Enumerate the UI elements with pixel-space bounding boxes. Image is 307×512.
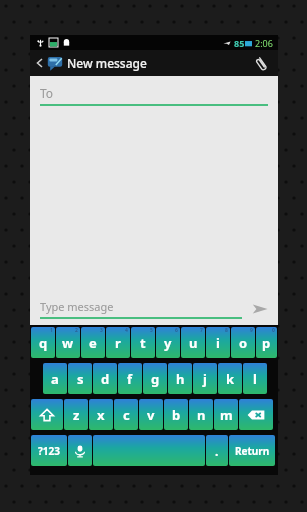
button[interactable]: 3 bbox=[81, 327, 105, 358]
button[interactable]: b bbox=[164, 399, 188, 430]
staticText: t bbox=[140, 334, 146, 352]
button[interactable]: Type message bbox=[40, 299, 242, 319]
button[interactable]: 0 bbox=[256, 327, 277, 358]
staticText: r bbox=[115, 334, 121, 352]
staticText: b bbox=[172, 406, 181, 424]
button[interactable]: Return bbox=[229, 435, 275, 466]
staticText: a bbox=[51, 370, 59, 388]
staticText: 5 bbox=[150, 327, 153, 334]
button[interactable]: To bbox=[40, 85, 268, 106]
button[interactable]: 1 bbox=[31, 327, 55, 358]
button[interactable]: Send bbox=[242, 293, 278, 325]
staticText: s bbox=[77, 370, 84, 388]
button[interactable]: Shift bbox=[31, 399, 63, 430]
button[interactable]: Space bbox=[93, 435, 205, 466]
button[interactable]: d bbox=[93, 363, 117, 394]
staticText: 7 bbox=[200, 327, 203, 334]
button[interactable]: c bbox=[114, 399, 138, 430]
staticText: h bbox=[176, 370, 185, 388]
staticText: To bbox=[40, 85, 54, 101]
button[interactable]: ?123 bbox=[31, 435, 67, 466]
staticText: o bbox=[239, 334, 248, 352]
staticText: g bbox=[151, 370, 160, 388]
staticText: c bbox=[123, 406, 130, 424]
button[interactable]: Voice input bbox=[68, 435, 92, 466]
staticText: z bbox=[73, 406, 80, 424]
button[interactable]: . bbox=[206, 435, 228, 466]
staticText: Return bbox=[235, 444, 270, 458]
button[interactable]: k bbox=[218, 363, 242, 394]
button[interactable]: 4 bbox=[106, 327, 130, 358]
staticText: k bbox=[226, 370, 235, 388]
button[interactable]: l bbox=[243, 363, 267, 394]
button[interactable]: 5 bbox=[131, 327, 155, 358]
button[interactable]: m bbox=[214, 399, 238, 430]
staticText: ?123 bbox=[38, 444, 60, 458]
staticText: 8 bbox=[225, 327, 228, 334]
staticText: 2:06 bbox=[255, 37, 273, 49]
button[interactable]: v bbox=[139, 399, 163, 430]
staticText: f bbox=[127, 370, 133, 388]
staticText: p bbox=[262, 334, 271, 352]
staticText: 6 bbox=[175, 327, 178, 334]
button[interactable]: 9 bbox=[231, 327, 255, 358]
button[interactable]: f bbox=[118, 363, 142, 394]
button[interactable]: 8 bbox=[206, 327, 230, 358]
button[interactable]: a bbox=[43, 363, 67, 394]
button[interactable]: g bbox=[143, 363, 167, 394]
staticText: j bbox=[203, 370, 207, 388]
staticText: l bbox=[253, 370, 257, 388]
button[interactable]: New message bbox=[30, 50, 244, 76]
staticText: 4 bbox=[125, 327, 128, 334]
button[interactable]: Attach bbox=[244, 50, 278, 76]
staticText: x bbox=[97, 406, 105, 424]
button[interactable]: x bbox=[89, 399, 113, 430]
staticText: 3 bbox=[100, 327, 103, 334]
staticText: New message bbox=[67, 55, 147, 71]
staticText: w bbox=[62, 334, 74, 352]
staticText: 1 bbox=[50, 327, 53, 334]
staticText: n bbox=[197, 406, 206, 424]
staticText: 9 bbox=[250, 327, 253, 334]
staticText: u bbox=[189, 334, 198, 352]
staticText: d bbox=[101, 370, 110, 388]
button[interactable]: s bbox=[68, 363, 92, 394]
button[interactable]: n bbox=[189, 399, 213, 430]
button[interactable]: j bbox=[193, 363, 217, 394]
button[interactable]: h bbox=[168, 363, 192, 394]
staticText: . bbox=[215, 443, 219, 459]
staticText: i bbox=[216, 334, 220, 352]
staticText: m bbox=[220, 406, 233, 424]
button[interactable]: z bbox=[64, 399, 88, 430]
staticText: 85 bbox=[234, 37, 245, 49]
button[interactable]: 6 bbox=[156, 327, 180, 358]
staticText: 2 bbox=[75, 327, 78, 334]
staticText: Type message bbox=[40, 299, 114, 314]
staticText: v bbox=[147, 406, 155, 424]
button[interactable]: 7 bbox=[181, 327, 205, 358]
button[interactable]: 2 bbox=[56, 327, 80, 358]
staticText: y bbox=[164, 334, 172, 352]
button[interactable]: Backspace bbox=[239, 399, 273, 430]
staticText: q bbox=[39, 334, 48, 352]
staticText: 0 bbox=[272, 327, 275, 334]
staticText: e bbox=[89, 334, 97, 352]
